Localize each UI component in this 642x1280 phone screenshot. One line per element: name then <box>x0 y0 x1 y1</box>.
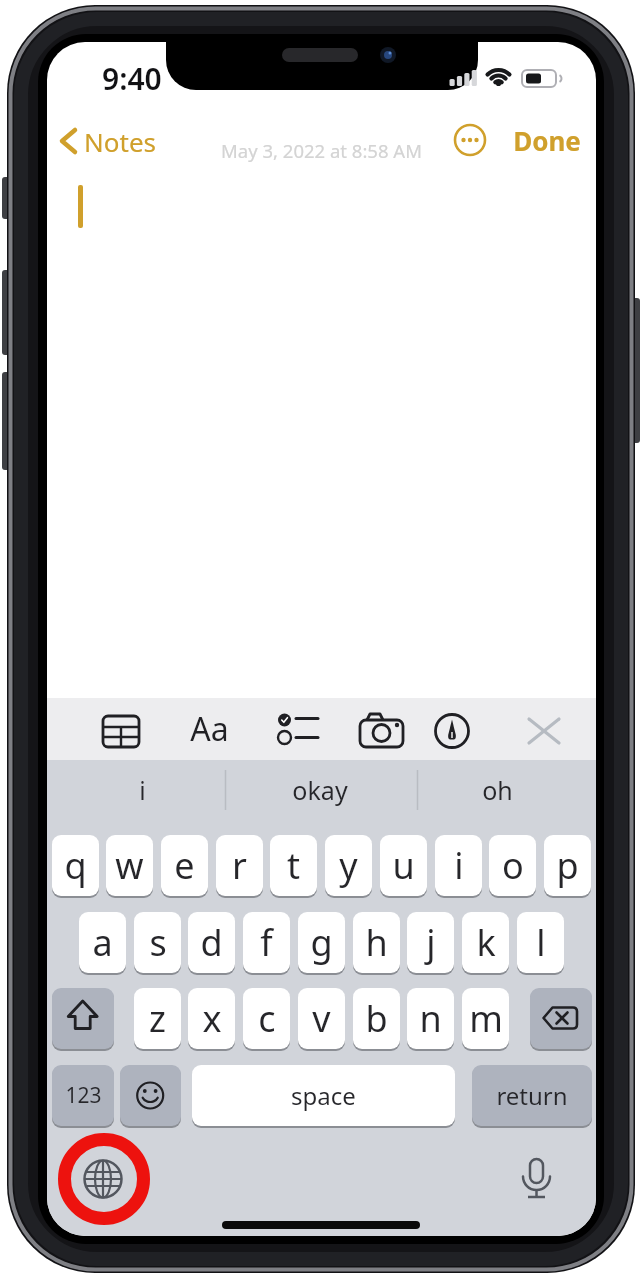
button[interactable] <box>99 710 143 754</box>
staticText: j <box>426 918 436 967</box>
button[interactable]: d <box>188 912 235 973</box>
button[interactable]: z <box>134 988 181 1049</box>
staticText: q <box>64 841 87 890</box>
button[interactable] <box>433 710 473 754</box>
button[interactable]: Aa <box>179 698 239 760</box>
button[interactable]: Done <box>507 118 587 162</box>
staticText: w <box>115 841 144 890</box>
button[interactable]: i <box>67 762 217 818</box>
staticText: f <box>260 918 273 967</box>
staticText: a <box>92 918 113 967</box>
button[interactable]: oh <box>432 762 562 818</box>
button[interactable]: n <box>407 988 454 1049</box>
button[interactable]: e <box>161 835 208 896</box>
staticText: o <box>502 841 524 890</box>
staticText: p <box>556 841 579 890</box>
button[interactable]: k <box>462 912 509 973</box>
staticText: Done <box>513 123 581 158</box>
staticText: i <box>454 841 464 890</box>
button[interactable]: v <box>298 988 345 1049</box>
staticText: v <box>312 994 331 1043</box>
button[interactable] <box>120 1065 181 1126</box>
button[interactable]: f <box>243 912 290 973</box>
staticText: return <box>496 1079 568 1112</box>
button[interactable]: m <box>462 988 509 1049</box>
button[interactable]: t <box>270 835 317 896</box>
staticText: d <box>200 918 223 967</box>
staticText: oh <box>482 773 513 807</box>
staticText: 9:40 <box>102 58 162 99</box>
staticText: k <box>476 918 496 967</box>
staticText: u <box>392 841 415 890</box>
staticText: l <box>536 918 546 967</box>
button[interactable] <box>530 988 592 1049</box>
button[interactable] <box>52 988 114 1049</box>
button[interactable] <box>517 1154 557 1202</box>
staticText: h <box>365 918 388 967</box>
button[interactable]: i <box>435 835 482 896</box>
staticText: t <box>287 841 300 890</box>
staticText: e <box>174 841 195 890</box>
button[interactable]: 123 <box>52 1065 114 1126</box>
button[interactable]: l <box>517 912 564 973</box>
button[interactable]: b <box>353 988 400 1049</box>
button[interactable]: w <box>106 835 153 896</box>
staticText: space <box>291 1079 356 1112</box>
staticText: Aa <box>190 707 229 751</box>
staticText: x <box>202 994 222 1043</box>
button[interactable] <box>357 710 405 754</box>
button[interactable]: y <box>325 835 372 896</box>
button[interactable] <box>84 1160 122 1198</box>
staticText: okay <box>292 773 348 807</box>
button[interactable]: o <box>489 835 536 896</box>
button[interactable] <box>451 121 489 159</box>
button[interactable] <box>521 712 561 752</box>
staticText: z <box>149 994 166 1043</box>
button[interactable]: c <box>243 988 290 1049</box>
button[interactable] <box>273 710 321 754</box>
button[interactable]: g <box>298 912 345 973</box>
staticText: 123 <box>65 1081 102 1110</box>
button[interactable]: a <box>79 912 126 973</box>
button[interactable]: j <box>407 912 454 973</box>
button[interactable]: space <box>192 1065 455 1126</box>
staticText: n <box>419 994 442 1043</box>
staticText: m <box>469 994 503 1043</box>
staticText: r <box>232 841 247 890</box>
button[interactable]: okay <box>245 762 395 818</box>
button[interactable]: q <box>52 835 99 896</box>
button[interactable]: h <box>353 912 400 973</box>
staticText: Notes <box>84 124 156 159</box>
button[interactable]: s <box>134 912 181 973</box>
staticText: i <box>139 773 146 807</box>
button[interactable]: p <box>544 835 591 896</box>
button[interactable]: Notes <box>57 118 187 162</box>
staticText: c <box>258 994 276 1043</box>
staticText: y <box>339 841 358 890</box>
button[interactable]: u <box>380 835 427 896</box>
button[interactable]: x <box>188 988 235 1049</box>
button[interactable]: return <box>472 1065 592 1126</box>
staticText: May 3, 2022 at 8:58 AM <box>221 138 422 163</box>
staticText: g <box>310 918 333 967</box>
button[interactable]: r <box>216 835 263 896</box>
staticText: b <box>365 994 388 1043</box>
staticText: s <box>149 918 167 967</box>
